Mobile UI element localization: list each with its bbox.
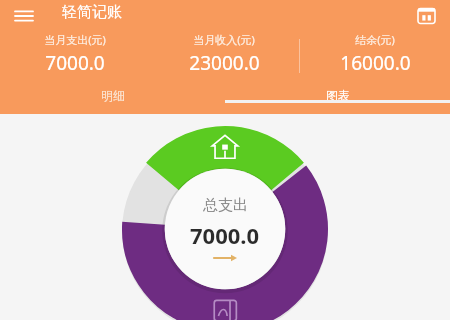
button[interactable]: 当月收入(元) <box>149 32 299 76</box>
staticText: 结余(元) <box>355 32 395 47</box>
staticText: 7000.0 <box>45 50 105 76</box>
staticText: 16000.0 <box>340 50 411 76</box>
staticText: 轻简记账 <box>62 3 122 22</box>
button[interactable]: 当月支出(元) <box>0 32 149 76</box>
button[interactable]: 图表 <box>225 88 450 103</box>
staticText: 当月支出(元) <box>44 32 106 47</box>
staticText: 明细 <box>101 88 125 103</box>
staticText: 当月收入(元) <box>193 32 255 47</box>
staticText: 总支出 <box>203 196 248 215</box>
staticText: 23000.0 <box>189 50 260 76</box>
staticText: 图表 <box>326 88 350 103</box>
button[interactable]: 明细 <box>0 88 225 103</box>
button[interactable]: Calendar <box>414 3 438 27</box>
button[interactable]: Menu <box>12 4 36 28</box>
staticText: 7000.0 <box>190 220 260 250</box>
button[interactable]: 结余(元) <box>300 32 450 76</box>
